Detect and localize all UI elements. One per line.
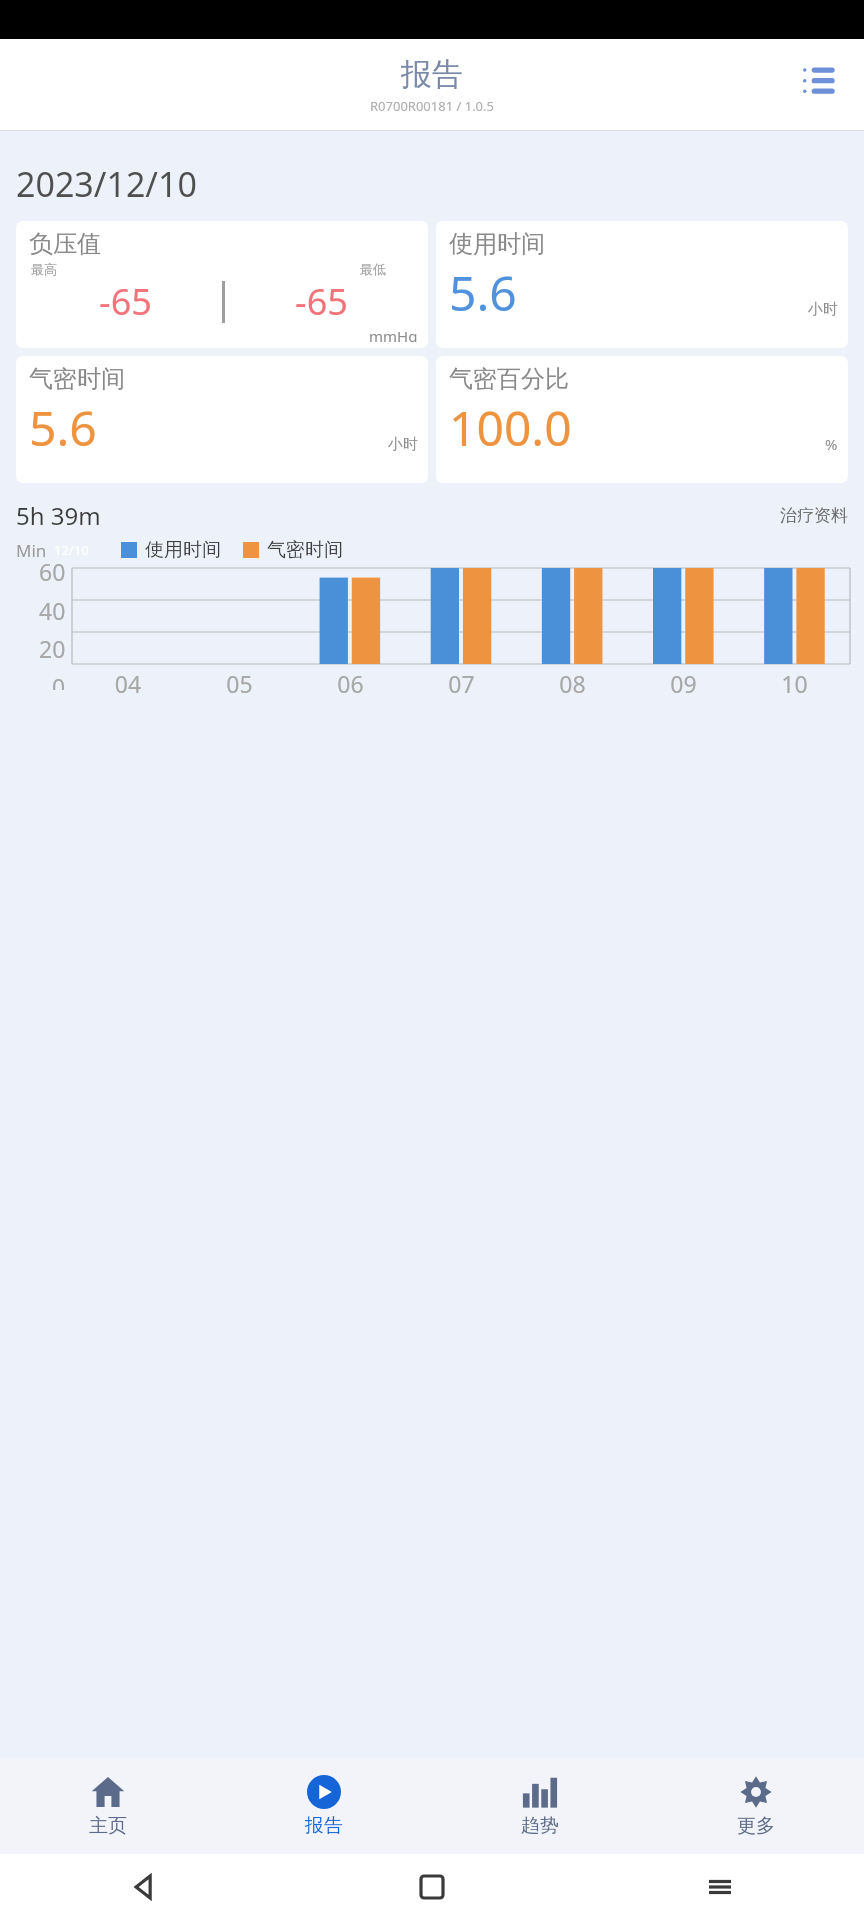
button[interactable]: 气密时间: [16, 356, 428, 483]
staticText: %: [825, 434, 838, 454]
staticText: 2023/12/10: [16, 161, 197, 207]
button[interactable]: 趋势: [432, 1758, 648, 1854]
staticText: R0700R00181 / 1.0.5: [370, 97, 494, 115]
staticText: 09: [628, 668, 739, 699]
staticText: 5h 39m: [16, 499, 101, 532]
staticText: 40: [39, 595, 66, 626]
staticText: Min: [16, 539, 47, 562]
staticText: 10: [739, 668, 850, 699]
staticText: 负压值: [29, 229, 101, 259]
staticText: 0: [52, 671, 66, 690]
staticText: 06: [295, 668, 406, 699]
staticText: 20: [39, 633, 66, 664]
button[interactable]: List: [796, 57, 842, 103]
staticText: 12/10: [54, 541, 89, 559]
button[interactable]: 主页: [0, 1758, 216, 1854]
staticText: 气密时间: [29, 364, 125, 394]
button[interactable]: 气密百分比: [436, 356, 848, 483]
staticText: 使用时间: [449, 229, 545, 259]
staticText: 60: [39, 556, 66, 587]
button[interactable]: 使用时间: [436, 221, 848, 348]
staticText: 100.0: [449, 395, 572, 460]
button[interactable]: 更多: [648, 1758, 864, 1854]
staticText: 趋势: [521, 1814, 559, 1838]
button[interactable]: 负压值: [16, 221, 428, 348]
staticText: 小时: [808, 300, 838, 319]
staticText: -65: [29, 277, 222, 326]
staticText: 最低: [360, 261, 386, 277]
staticText: 报告: [401, 55, 463, 94]
staticText: 小时: [388, 435, 418, 454]
button[interactable]: 报告: [216, 1758, 432, 1854]
staticText: 气密时间: [267, 538, 343, 562]
staticText: 07: [406, 668, 517, 699]
staticText: 气密百分比: [449, 364, 569, 394]
staticText: 5.6: [29, 395, 97, 460]
staticText: 05: [184, 668, 295, 699]
staticText: 使用时间: [145, 538, 221, 562]
staticText: 更多: [737, 1814, 775, 1838]
staticText: 04: [72, 668, 184, 699]
staticText: 报告: [305, 1814, 343, 1838]
staticText: -65: [225, 277, 418, 326]
staticText: 08: [517, 668, 628, 699]
button[interactable]: 治疗资料: [780, 505, 848, 526]
staticText: 主页: [89, 1814, 127, 1838]
staticText: 最高: [31, 261, 57, 277]
staticText: mmHg: [369, 326, 418, 342]
staticText: 5.6: [449, 260, 517, 325]
